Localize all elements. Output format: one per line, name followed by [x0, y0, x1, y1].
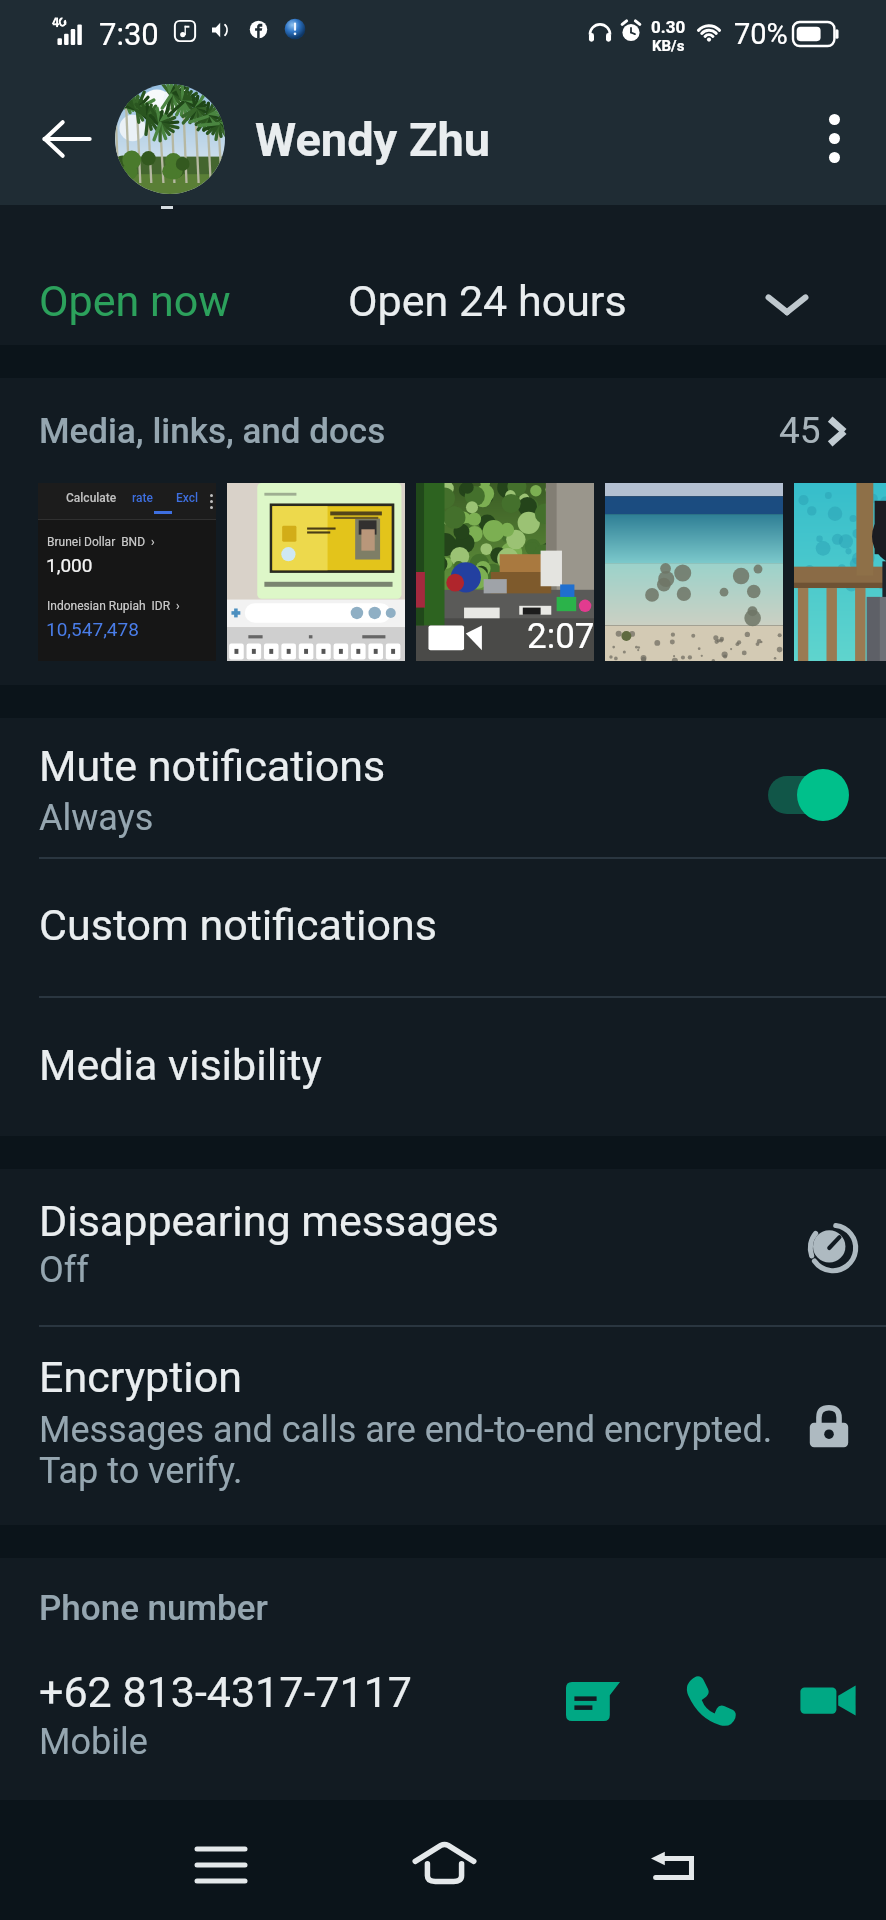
staticText: 0.30 [651, 17, 686, 37]
staticText: +62 813-4317-7117 [39, 1667, 412, 1717]
staticText: Wendy Zhu [255, 112, 491, 167]
staticText: Open 24 hours [348, 276, 627, 326]
staticText: Custom notifications [39, 900, 437, 950]
staticText: 10,547,478 [46, 618, 139, 640]
button[interactable]: Video call [782, 1654, 874, 1746]
staticText: Encryption [39, 1352, 242, 1402]
staticText: Open now [39, 276, 231, 326]
staticText: KB/s [652, 37, 685, 55]
button[interactable] [115, 84, 225, 194]
button[interactable]: Message [547, 1654, 639, 1746]
staticText: Mute notifications [39, 741, 386, 791]
staticText: Off [39, 1249, 89, 1291]
button[interactable]: Media, links, and docs [0, 378, 886, 482]
staticText: Messages and calls are end-to-end encryp… [39, 1409, 773, 1491]
button[interactable]: More options [790, 94, 878, 182]
staticText: Calculate [66, 491, 117, 505]
button[interactable]: Recent apps [166, 1810, 276, 1920]
staticText: Media visibility [39, 1040, 322, 1090]
button[interactable]: Home [389, 1808, 499, 1918]
button[interactable]: Call [663, 1654, 755, 1746]
button[interactable]: Custom notifications [0, 857, 886, 996]
staticText: Media, links, and docs [39, 411, 386, 452]
button[interactable]: Open now [0, 205, 886, 345]
button[interactable]: Encryption [0, 1325, 886, 1525]
staticText: Mobile [39, 1721, 148, 1763]
staticText: rate [132, 491, 153, 505]
staticText: Brunei Dollar BND › [47, 535, 155, 549]
button[interactable]: Mute notifications [0, 718, 886, 857]
staticText: 7:30 [99, 16, 159, 52]
button[interactable]: Back [619, 1810, 729, 1920]
staticText: Indonesian Rupiah IDR › [47, 599, 180, 613]
button[interactable] [794, 483, 886, 661]
staticText: Disappearing messages [39, 1196, 499, 1246]
button[interactable]: Back [24, 96, 110, 182]
staticText: Excl [176, 491, 199, 505]
button[interactable] [416, 483, 594, 661]
button[interactable]: Media visibility [0, 996, 886, 1136]
staticText: 1,000 [46, 554, 93, 576]
staticText: Phone number [39, 1588, 268, 1629]
staticText: 45 [779, 409, 821, 452]
staticText: 70% [734, 17, 788, 51]
button[interactable] [227, 483, 405, 661]
staticText: 2:07 [527, 616, 595, 657]
button[interactable]: Calculate [38, 483, 216, 661]
button[interactable]: Disappearing messages [0, 1169, 886, 1325]
button[interactable] [605, 483, 783, 661]
staticText: Always [39, 797, 154, 839]
